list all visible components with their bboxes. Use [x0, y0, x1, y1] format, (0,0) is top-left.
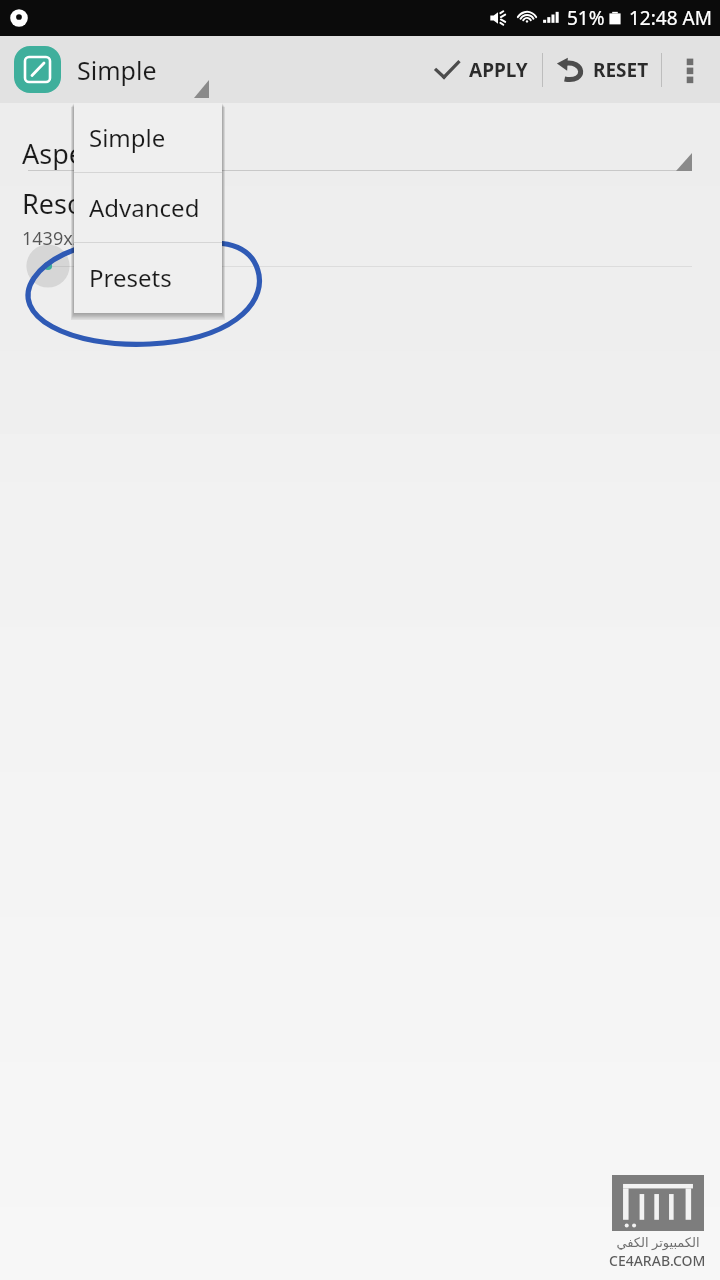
button[interactable]: Presets	[74, 243, 222, 312]
staticText: 51%	[567, 5, 605, 31]
staticText: Advanced	[89, 191, 200, 224]
button[interactable]: App icon	[14, 46, 61, 93]
staticText: Simple	[89, 121, 166, 154]
button[interactable]: Simple	[77, 36, 209, 103]
staticText: 1439x2559	[22, 226, 114, 251]
staticText: APPLY	[469, 57, 528, 83]
staticText: CE4ARAB.COM	[609, 1251, 706, 1270]
button[interactable]: More options	[668, 36, 712, 103]
button[interactable]: APPLY	[424, 36, 536, 103]
button[interactable]: RESET	[549, 36, 655, 103]
staticText: Presets	[89, 261, 172, 294]
staticText: Aspect ratio	[22, 135, 173, 172]
button[interactable]: Aspect ratio	[0, 103, 720, 203]
button[interactable]: Advanced	[74, 173, 222, 242]
staticText: Resolution	[22, 185, 157, 222]
staticText: RESET	[593, 57, 649, 83]
button[interactable]: Simple	[74, 103, 222, 172]
staticText: 12:48 AM	[629, 5, 712, 31]
staticText: Simple	[77, 53, 157, 87]
staticText: الكمبيوتر الكفي	[616, 1233, 700, 1251]
